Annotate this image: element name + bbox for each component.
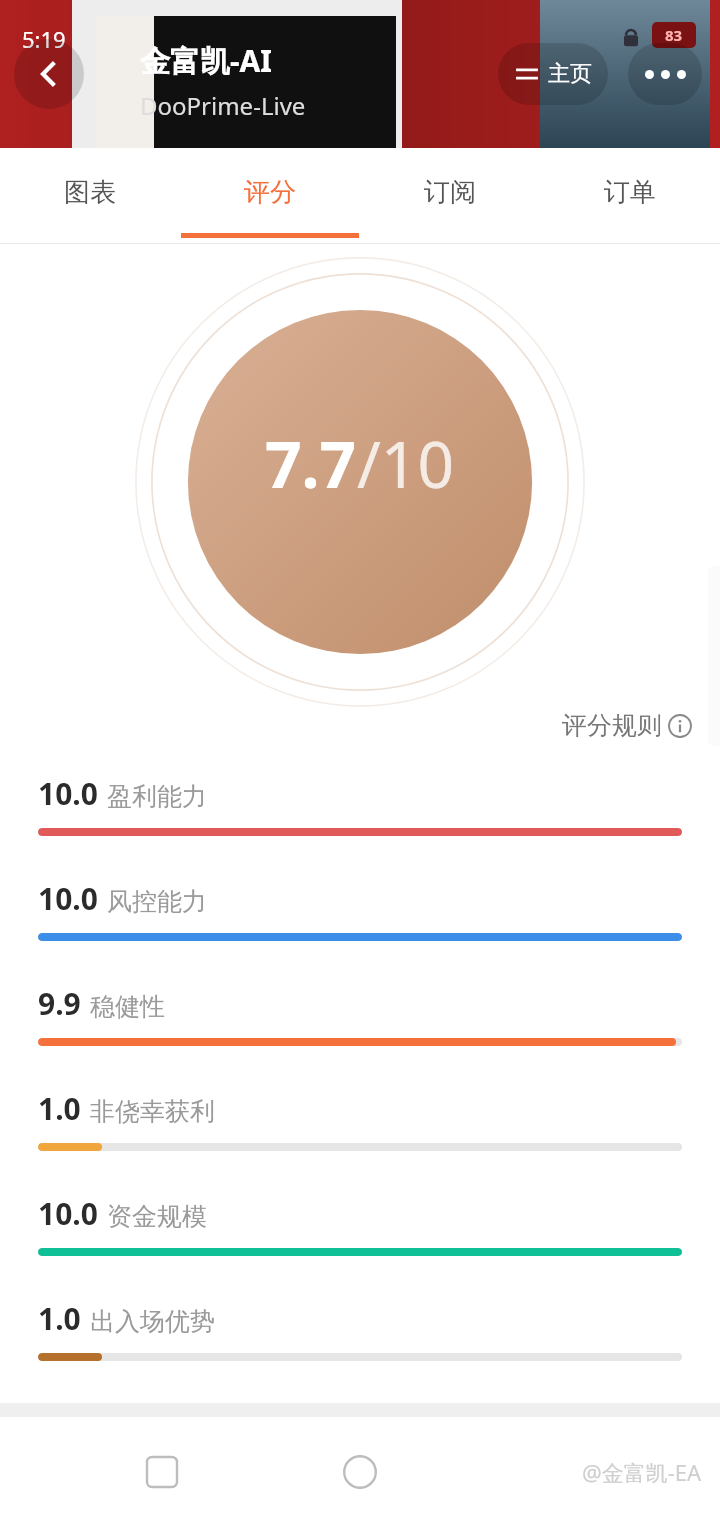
button[interactable]: 10.0 [0, 1193, 720, 1298]
button[interactable]: Home [328, 1440, 392, 1504]
staticText: 订单 [604, 176, 656, 209]
staticText: 10.0 [38, 773, 98, 814]
staticText: 评分规则 [562, 710, 662, 741]
staticText: 1.0 [38, 1298, 81, 1339]
staticText: 资金规模 [107, 1201, 207, 1232]
button[interactable]: 评分规则 [556, 704, 698, 747]
staticText: 金富凯-AI [140, 40, 273, 81]
button[interactable]: 订阅 [360, 148, 540, 244]
button[interactable]: 1.0 [0, 1088, 720, 1193]
button[interactable]: 评分 [180, 148, 360, 244]
staticText: @金富凯-EA [582, 1457, 702, 1487]
staticText: 7.7 [265, 420, 357, 507]
staticText: 1.0 [38, 1088, 81, 1129]
button[interactable]: 主页 [498, 43, 608, 105]
staticText: 83 [665, 25, 683, 45]
button[interactable]: 1.0 [0, 1298, 720, 1403]
staticText: 图表 [64, 176, 116, 209]
button[interactable]: 9.9 [0, 983, 720, 1088]
button[interactable]: 10.0 [0, 773, 720, 878]
staticText: 出入场优势 [90, 1306, 215, 1337]
staticText: 主页 [548, 60, 592, 88]
staticText: 稳健性 [90, 991, 165, 1022]
button[interactable]: Back [14, 39, 84, 109]
button[interactable]: Recents [130, 1440, 194, 1504]
button[interactable]: 10.0 [0, 878, 720, 983]
button[interactable]: 订单 [540, 148, 720, 244]
staticText: 订阅 [424, 176, 476, 209]
staticText: 盈利能力 [107, 781, 207, 812]
staticText: 评分 [244, 176, 296, 209]
staticText: 10.0 [38, 1193, 98, 1234]
button[interactable]: 图表 [0, 148, 180, 244]
staticText: 非侥幸获利 [90, 1096, 215, 1127]
button[interactable]: More options [628, 43, 702, 105]
staticText: 9.9 [38, 983, 81, 1024]
staticText: 5:19 [22, 24, 66, 54]
staticText: DooPrime-Live [140, 89, 306, 122]
staticText: /10 [357, 420, 455, 507]
staticText: 风控能力 [107, 886, 207, 917]
staticText: 10.0 [38, 878, 98, 919]
